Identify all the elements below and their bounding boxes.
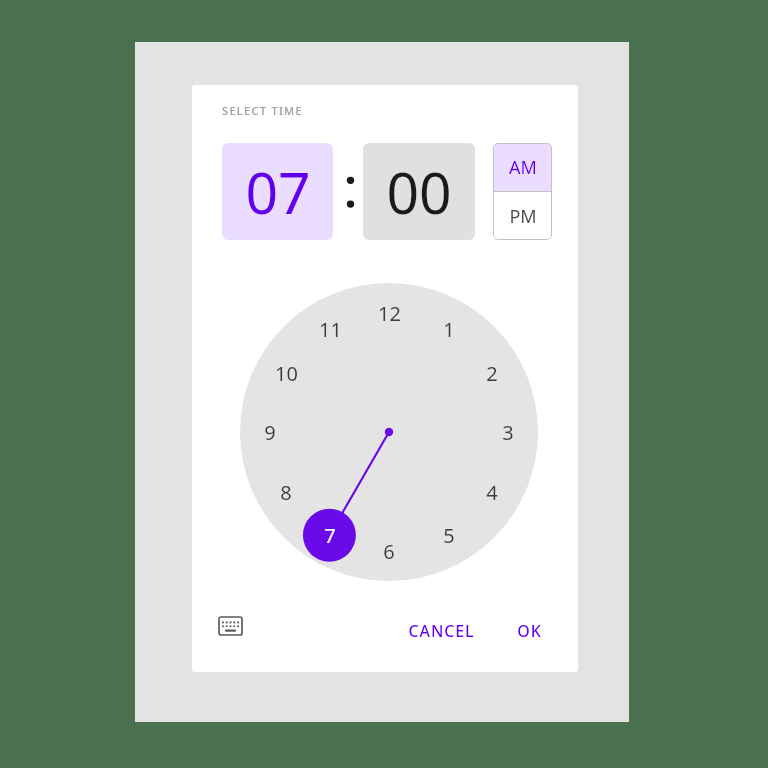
button[interactable]: 00 — [363, 143, 475, 240]
staticText: 12 — [378, 300, 401, 327]
staticText: 9 — [264, 419, 276, 446]
staticText: 5 — [443, 522, 455, 549]
staticText: 4 — [486, 479, 498, 506]
staticText: OK — [517, 620, 542, 642]
staticText: 07 — [245, 153, 311, 231]
staticText: AM — [509, 155, 537, 180]
staticText: 1 — [443, 316, 455, 343]
staticText: 6 — [383, 538, 395, 565]
staticText: 8 — [280, 479, 292, 506]
button[interactable]: Switch to keyboard input — [208, 604, 252, 648]
button[interactable]: 07 — [222, 143, 333, 240]
button[interactable]: OK — [504, 612, 554, 650]
button[interactable]: 1 — [240, 283, 538, 581]
staticText: SELECT TIME — [222, 103, 303, 118]
button[interactable]: PM — [493, 192, 552, 240]
button[interactable]: AM — [493, 143, 552, 191]
staticText: PM — [509, 204, 537, 229]
staticText: 2 — [486, 360, 498, 387]
button[interactable]: CANCEL — [400, 612, 482, 650]
staticText: 7 — [324, 522, 336, 549]
staticText: 00 — [386, 153, 452, 231]
staticText: 10 — [275, 360, 298, 387]
staticText: 3 — [502, 419, 514, 446]
staticText: CANCEL — [408, 620, 475, 642]
staticText: 11 — [319, 316, 342, 343]
